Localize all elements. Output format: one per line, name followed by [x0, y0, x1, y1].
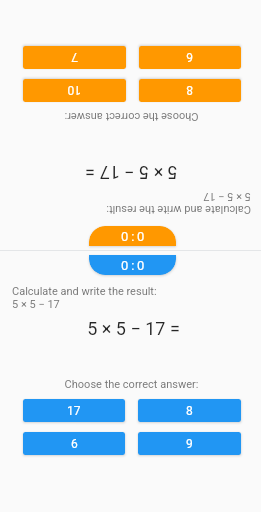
staticText: 5 × 5 − 17 — [203, 190, 251, 203]
staticText: 0 : 0 — [121, 258, 145, 273]
staticText: 8 — [186, 83, 193, 97]
button[interactable]: 7 — [23, 46, 126, 69]
button[interactable]: 9 — [138, 432, 241, 455]
staticText: 8 — [186, 404, 193, 418]
staticText: 7 — [71, 50, 78, 64]
staticText: 5 × 5 − 17 — [12, 298, 60, 311]
button[interactable]: 10 — [23, 79, 126, 102]
staticText: Choose the correct answer: — [1, 378, 261, 391]
button[interactable]: 0 : 0 — [89, 255, 176, 275]
staticText: 5 × 5 − 17 = — [3, 318, 261, 339]
staticText: Calculate and write the result: — [106, 203, 251, 216]
staticText: Calculate and write the result: — [12, 285, 157, 298]
button[interactable]: 0 : 0 — [89, 226, 176, 246]
staticText: 10 — [67, 83, 81, 97]
staticText: 6 — [186, 50, 193, 64]
staticText: 17 — [67, 404, 81, 418]
button[interactable]: 8 — [138, 399, 241, 422]
staticText: 9 — [186, 437, 193, 451]
button[interactable]: 8 — [139, 79, 241, 102]
staticText: 6 — [71, 437, 78, 451]
staticText: 5 × 5 − 17 = — [1, 162, 261, 183]
button[interactable]: 6 — [139, 46, 241, 69]
button[interactable]: 17 — [23, 399, 125, 422]
button[interactable]: 6 — [23, 432, 125, 455]
staticText: Choose the correct answer: — [1, 110, 261, 123]
staticText: 0 : 0 — [121, 229, 145, 244]
